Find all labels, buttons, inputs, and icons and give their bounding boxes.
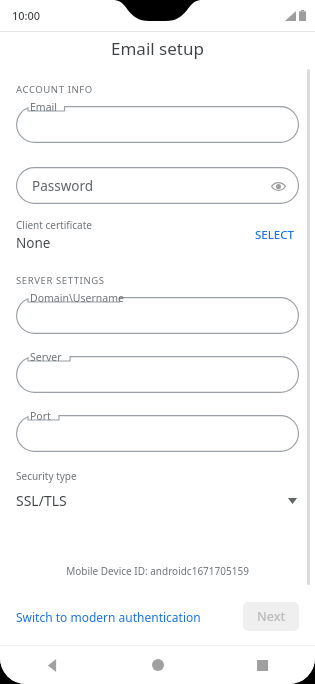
staticText: Security type <box>16 469 77 483</box>
button[interactable]: Recent apps <box>210 646 315 684</box>
button[interactable]: Home <box>105 646 210 684</box>
staticText: SSL/TLS <box>16 491 285 510</box>
button[interactable]: Show password <box>267 175 289 197</box>
staticText: Email <box>30 100 57 114</box>
staticText: Port <box>30 409 51 423</box>
staticText: SELECT <box>255 227 295 243</box>
staticText: 10:00 <box>12 8 41 23</box>
button[interactable]: Password <box>16 167 299 204</box>
button[interactable]: Next <box>243 602 299 631</box>
staticText: Server <box>30 350 62 364</box>
button[interactable]: Port <box>16 415 299 452</box>
staticText: Mobile Device ID: androidc1671705159 <box>0 564 315 578</box>
staticText: Client certificate <box>16 218 92 232</box>
other: Open security type dropdown <box>285 494 299 508</box>
staticText: Email setup <box>111 37 204 60</box>
staticText: SERVER SETTINGS <box>16 274 105 287</box>
staticText: Switch to modern authentication <box>16 609 201 625</box>
staticText: None <box>16 234 51 252</box>
button[interactable]: Security type <box>0 469 315 516</box>
button[interactable]: Back <box>0 646 105 684</box>
staticText: Domain\Username <box>30 291 124 305</box>
staticText: ACCOUNT INFO <box>16 83 93 96</box>
button[interactable]: Email <box>16 106 299 143</box>
button[interactable]: Server <box>16 356 299 393</box>
button[interactable]: SELECT <box>251 223 299 247</box>
staticText: Password <box>32 177 94 195</box>
button[interactable]: Switch to modern authentication <box>16 603 201 631</box>
staticText: Next <box>257 608 286 625</box>
button[interactable]: Domain\Username <box>16 297 299 334</box>
